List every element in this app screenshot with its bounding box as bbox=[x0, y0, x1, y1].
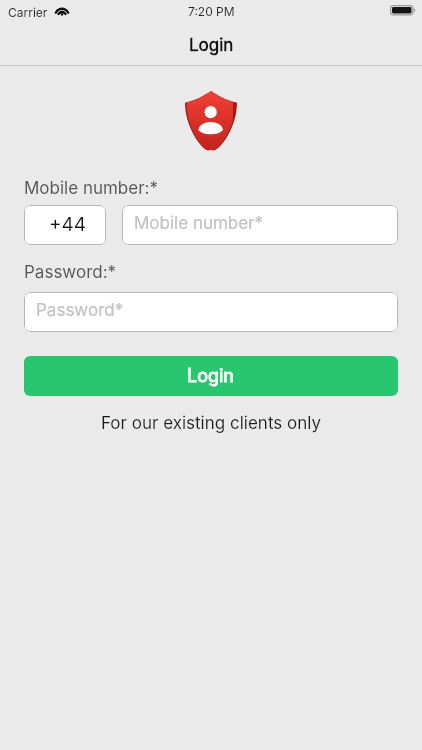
staticText: Login bbox=[187, 365, 235, 387]
staticText: Login bbox=[189, 35, 234, 56]
button[interactable]: Mobile number* bbox=[122, 205, 398, 245]
staticText: +44 bbox=[49, 213, 87, 236]
staticText: For our existing clients only bbox=[24, 413, 398, 434]
button[interactable]: +44 bbox=[24, 205, 106, 245]
staticText: Password:* bbox=[24, 262, 117, 283]
staticText: Password* bbox=[36, 300, 124, 321]
staticText: Mobile number:* bbox=[24, 178, 159, 199]
staticText: 7:20 PM bbox=[188, 4, 235, 19]
button[interactable]: Password* bbox=[24, 292, 398, 332]
staticText: Carrier bbox=[8, 5, 48, 20]
staticText: Mobile number* bbox=[134, 213, 264, 234]
button[interactable]: Login bbox=[24, 356, 398, 396]
